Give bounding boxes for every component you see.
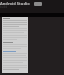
button[interactable]: Action: [34, 2, 42, 6]
staticText: Android Studio: [0, 1, 30, 6]
button[interactable]: [2, 17, 28, 73]
staticText: build: [0, 5, 8, 9]
